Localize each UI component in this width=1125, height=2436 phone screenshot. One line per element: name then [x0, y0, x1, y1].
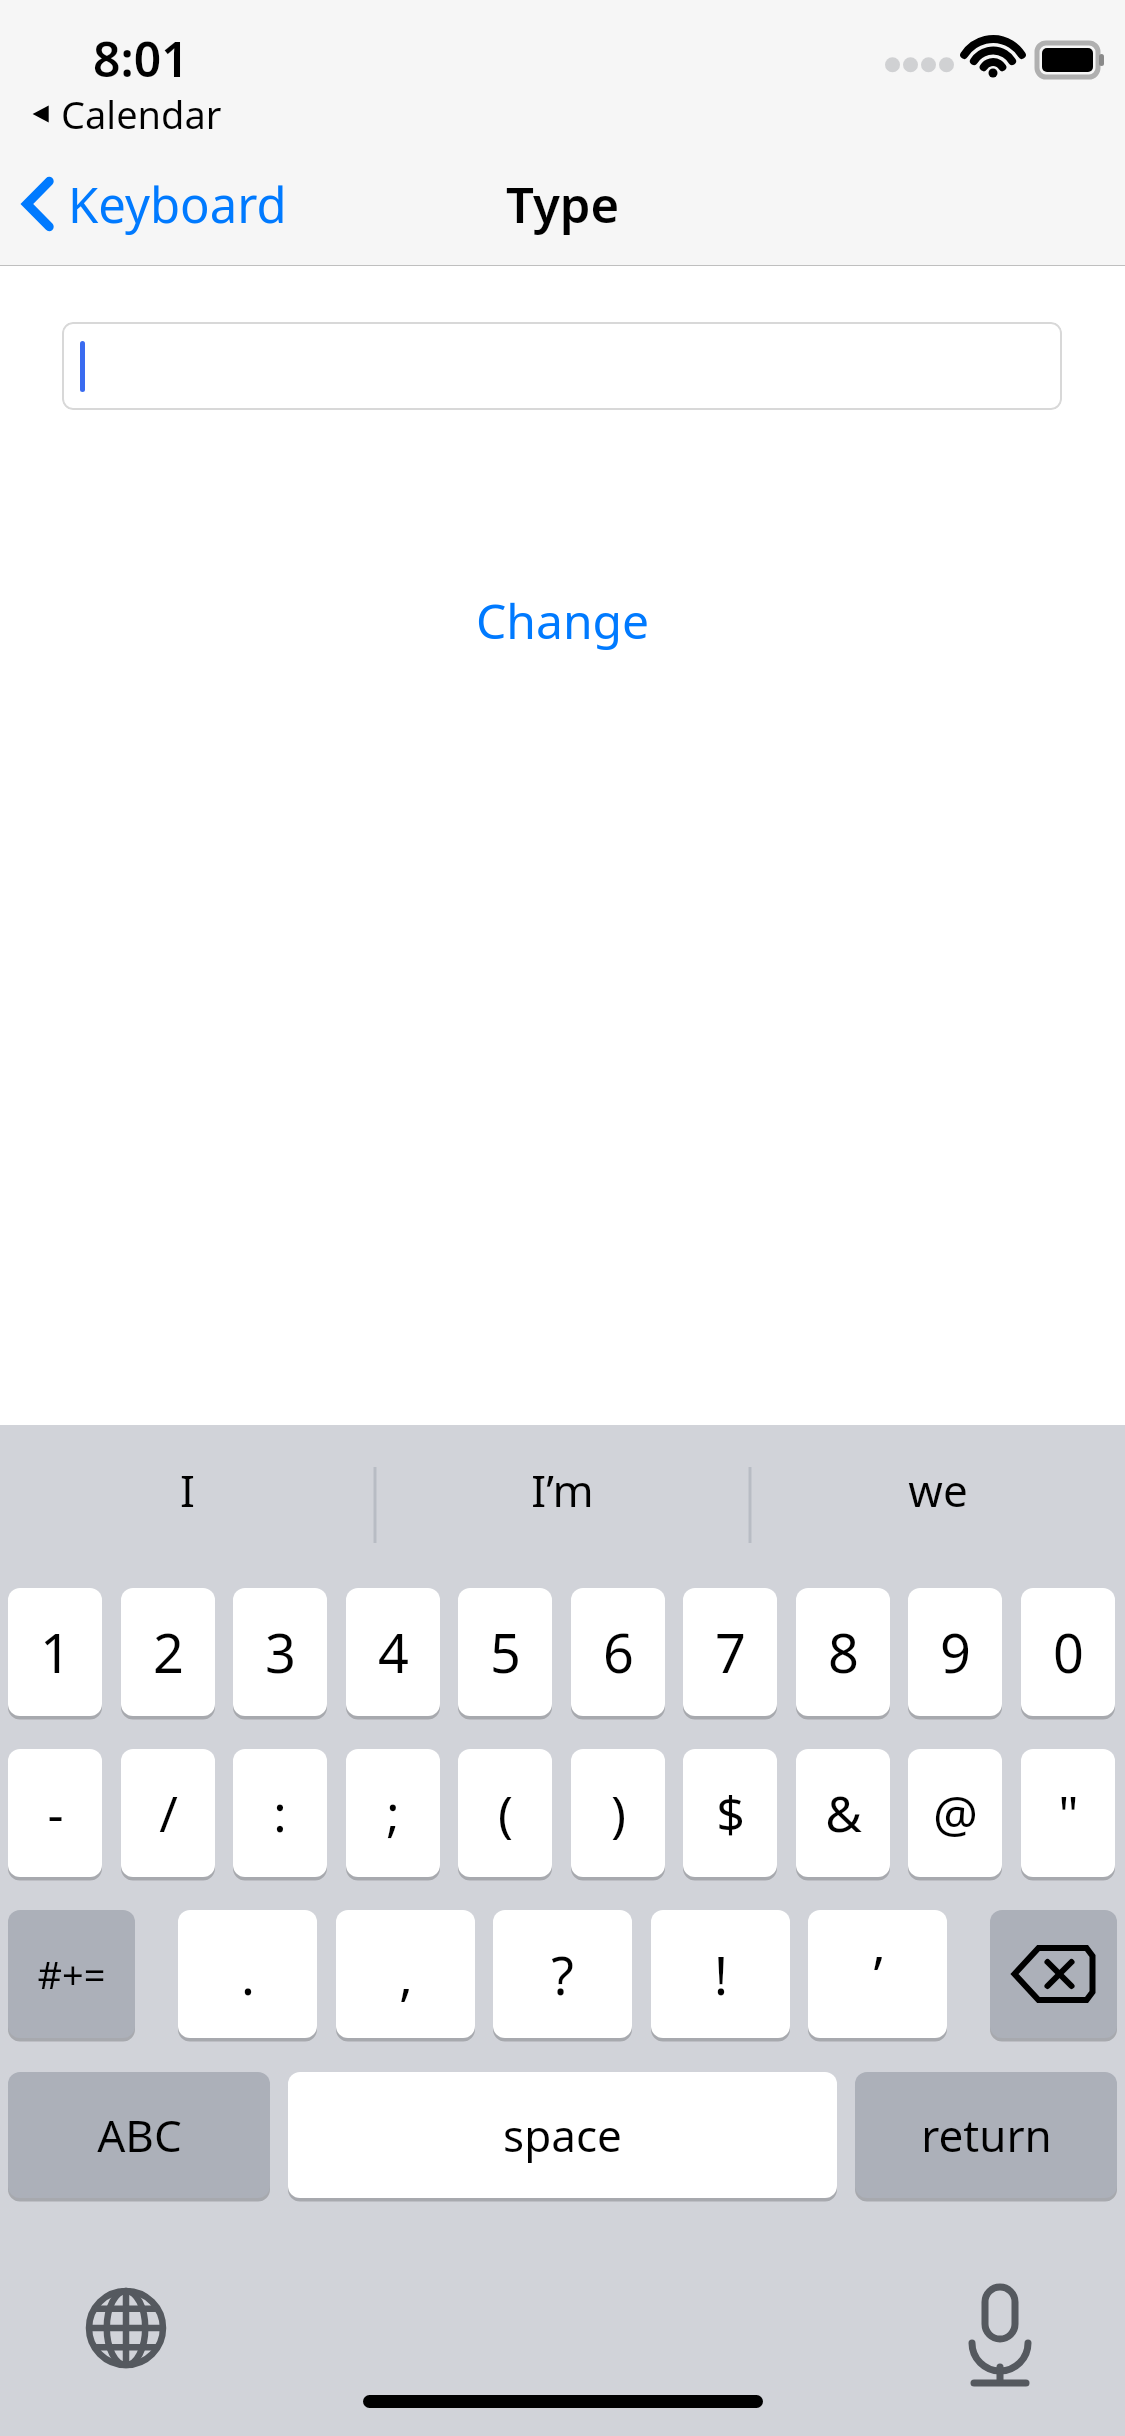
staticText: return: [921, 2105, 1052, 2165]
staticText: I’m: [531, 1460, 594, 1520]
staticText: (: [498, 1779, 513, 1847]
button[interactable]: ;: [346, 1749, 440, 1877]
staticText: we: [908, 1460, 968, 1520]
button[interactable]: (: [458, 1749, 552, 1877]
staticText: 8:01: [93, 26, 189, 91]
button[interactable]: ": [1021, 1749, 1115, 1877]
staticText: ;: [386, 1779, 400, 1847]
staticText: Keyboard: [68, 171, 287, 238]
button[interactable]: we: [750, 1425, 1125, 1555]
staticText: #+=: [37, 1948, 106, 2000]
staticText: space: [503, 2105, 622, 2165]
button[interactable]: ): [571, 1749, 665, 1877]
staticText: 7: [715, 1615, 746, 1689]
staticText: @: [933, 1779, 978, 1847]
staticText: Change: [476, 588, 650, 653]
staticText: /: [159, 1779, 178, 1847]
staticText: -: [47, 1779, 64, 1847]
button[interactable]: &: [796, 1749, 890, 1877]
button[interactable]: 0: [1021, 1588, 1115, 1716]
button[interactable]: Dictate: [942, 2270, 1058, 2386]
button[interactable]: ABC: [8, 2072, 270, 2198]
button[interactable]: !: [651, 1910, 790, 2038]
button[interactable]: space: [288, 2072, 837, 2198]
staticText: .: [241, 1939, 255, 2010]
button[interactable]: ?: [493, 1910, 632, 2038]
button[interactable]: I’m: [375, 1425, 750, 1555]
staticText: Calendar: [61, 88, 222, 140]
button[interactable]: 1: [8, 1588, 102, 1716]
staticText: 4: [378, 1615, 409, 1689]
button[interactable]: 4: [346, 1588, 440, 1716]
button[interactable]: -: [8, 1749, 102, 1877]
staticText: 2: [153, 1615, 184, 1689]
staticText: &: [825, 1779, 862, 1847]
staticText: ?: [551, 1939, 574, 2010]
staticText: ): [611, 1779, 626, 1847]
staticText: !: [714, 1939, 728, 2010]
staticText: 9: [940, 1615, 971, 1689]
button[interactable]: [62, 322, 1062, 410]
button[interactable]: ,: [336, 1910, 475, 2038]
button[interactable]: /: [121, 1749, 215, 1877]
button[interactable]: #+=: [8, 1910, 135, 2038]
button[interactable]: ’: [808, 1910, 947, 2038]
button[interactable]: Change: [0, 580, 1125, 660]
staticText: ": [1058, 1779, 1079, 1847]
button[interactable]: 7: [683, 1588, 777, 1716]
button[interactable]: Backspace: [990, 1910, 1117, 2038]
button[interactable]: 9: [908, 1588, 1002, 1716]
button[interactable]: Calendar: [30, 88, 222, 140]
button[interactable]: $: [683, 1749, 777, 1877]
staticText: $: [716, 1779, 745, 1847]
button[interactable]: 8: [796, 1588, 890, 1716]
button[interactable]: I: [0, 1425, 375, 1555]
button[interactable]: 6: [571, 1588, 665, 1716]
staticText: 1: [40, 1615, 71, 1689]
staticText: I: [180, 1460, 195, 1520]
staticText: ,: [399, 1939, 413, 2010]
staticText: :: [273, 1779, 287, 1847]
button[interactable]: return: [855, 2072, 1117, 2198]
staticText: Type: [506, 171, 620, 238]
staticText: 3: [265, 1615, 296, 1689]
button[interactable]: 5: [458, 1588, 552, 1716]
staticText: ’: [873, 1939, 883, 2010]
button[interactable]: 2: [121, 1588, 215, 1716]
button[interactable]: .: [178, 1910, 317, 2038]
staticText: 6: [603, 1615, 634, 1689]
staticText: ABC: [97, 2105, 182, 2165]
button[interactable]: @: [908, 1749, 1002, 1877]
button[interactable]: 3: [233, 1588, 327, 1716]
staticText: 0: [1053, 1615, 1084, 1689]
button[interactable]: Switch keyboard: [68, 2270, 184, 2386]
staticText: 8: [828, 1615, 859, 1689]
button[interactable]: :: [233, 1749, 327, 1877]
staticText: 5: [490, 1615, 521, 1689]
button[interactable]: Keyboard: [18, 165, 287, 243]
